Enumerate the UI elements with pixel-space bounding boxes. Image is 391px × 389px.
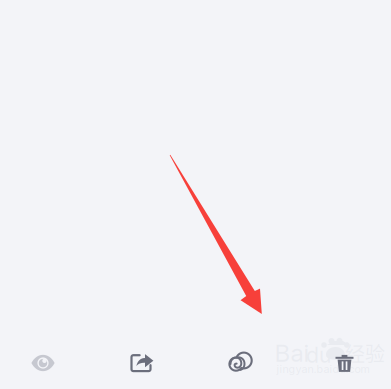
staticText: du: [306, 342, 332, 368]
button[interactable]: Preview: [0, 341, 86, 385]
staticText: Bai: [274, 338, 309, 367]
button[interactable]: Save to cloud: [198, 340, 284, 384]
staticText: jingyan.baidu.com: [276, 362, 369, 375]
button[interactable]: Share: [99, 341, 185, 385]
button[interactable]: Delete: [301, 341, 387, 385]
staticText: 经验: [345, 338, 385, 367]
